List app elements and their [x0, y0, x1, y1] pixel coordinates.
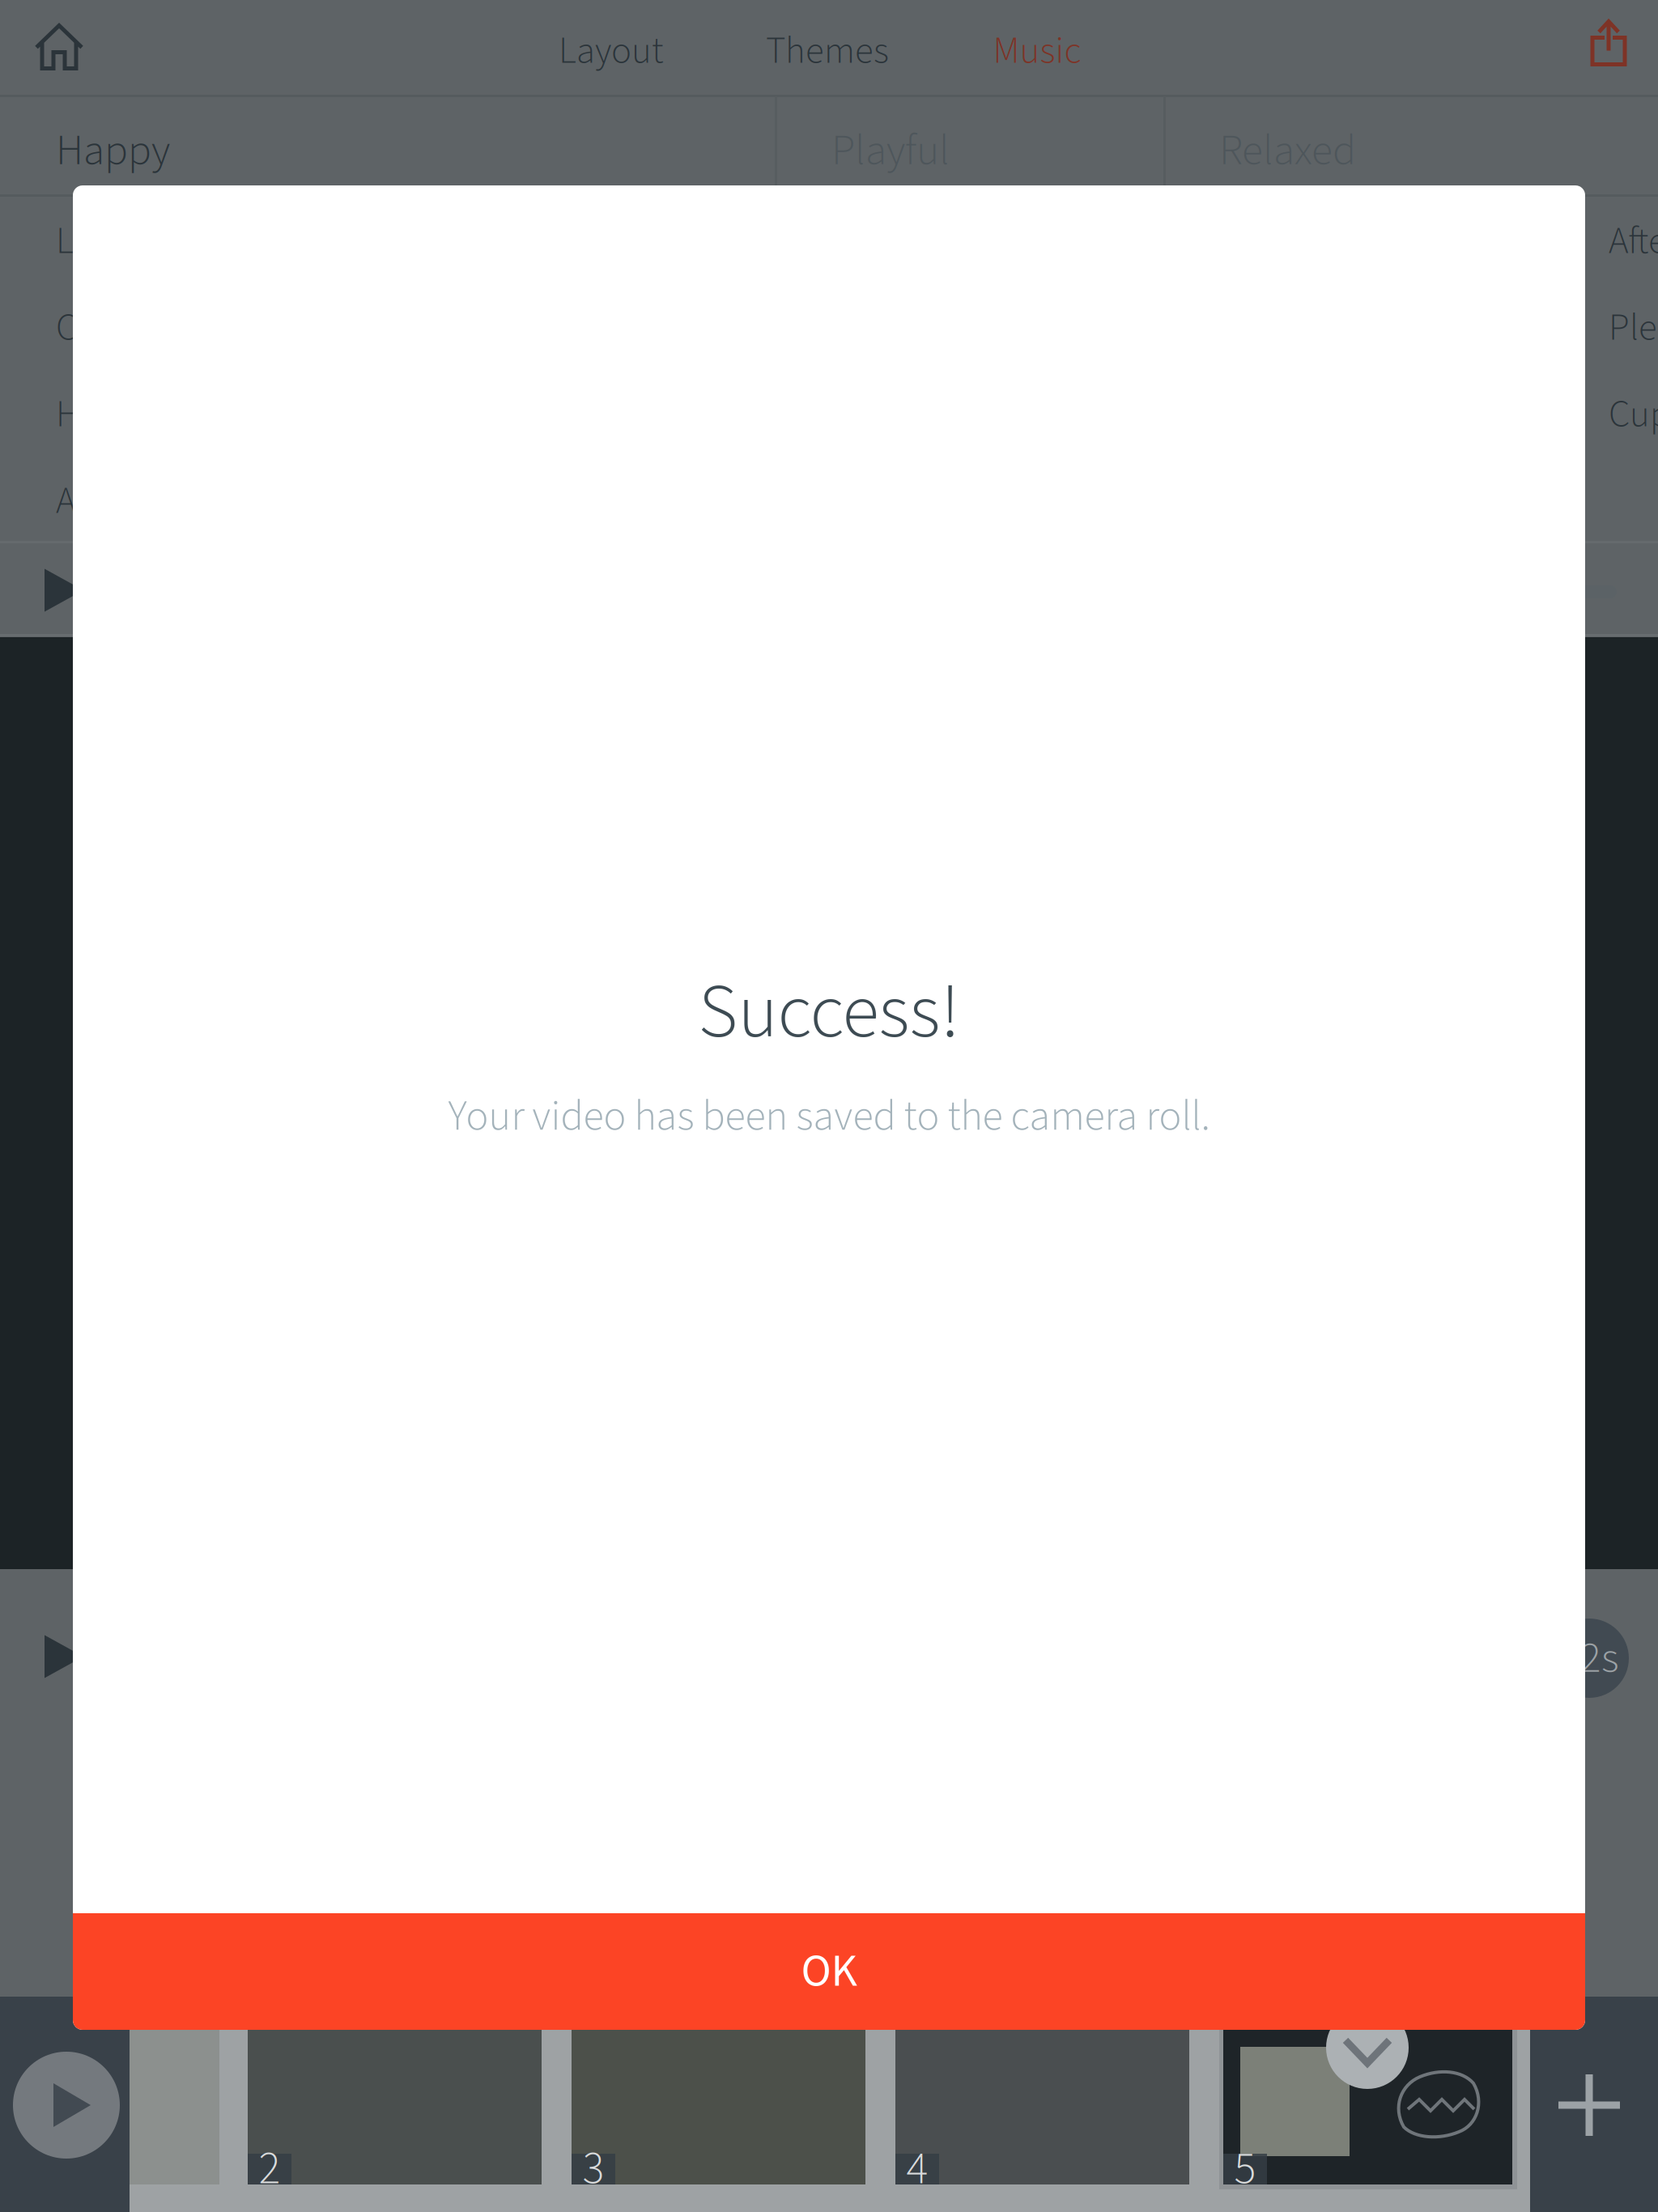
button[interactable]: OK — [73, 1913, 1585, 2030]
staticText: Hijinks — [56, 388, 160, 442]
staticText: OK — [801, 1939, 857, 2004]
staticText: 2 — [259, 2137, 281, 2201]
staticText: Happy — [56, 120, 170, 181]
staticText: Cup — [1609, 388, 1658, 442]
button[interactable]: Music — [956, 3, 1118, 99]
staticText: 4 — [906, 2137, 928, 2201]
staticText: Pleasant — [1609, 301, 1658, 355]
staticText: Playful — [831, 120, 950, 181]
staticText: Acrobat — [56, 474, 175, 528]
staticText: Success! — [698, 959, 960, 1067]
staticText: Relaxed — [1219, 120, 1356, 181]
staticText: 02s — [1559, 1627, 1619, 1689]
button[interactable]: Share — [1540, 0, 1658, 91]
staticText: Music — [993, 24, 1081, 78]
staticText: 5 — [1234, 2137, 1256, 2201]
button[interactable]: Themes — [738, 3, 916, 99]
staticText: Themes — [766, 24, 889, 78]
staticText: Your video has been saved to the camera … — [448, 1087, 1210, 1146]
button[interactable]: Home — [0, 0, 136, 95]
staticText: 3 — [582, 2137, 604, 2201]
button[interactable]: Layout — [522, 3, 700, 99]
button[interactable]: Add media — [1524, 2040, 1654, 2170]
staticText: Afternoon — [1609, 214, 1658, 268]
staticText: Lemonade — [56, 214, 220, 268]
button[interactable]: Clip options — [1326, 2006, 1409, 2089]
staticText: Layout — [559, 24, 664, 78]
staticText: Continental — [56, 301, 236, 355]
